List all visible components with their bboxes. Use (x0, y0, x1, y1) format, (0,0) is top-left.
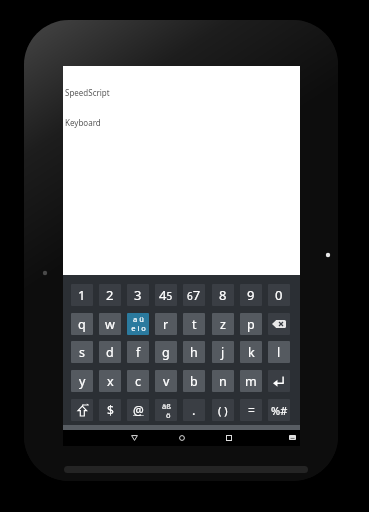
staticText: Keyboard (65, 117, 101, 128)
staticText: SpeedScript (65, 87, 110, 98)
button[interactable]: y (71, 370, 93, 392)
staticText: x (107, 373, 114, 390)
staticText: äß ö (162, 401, 171, 420)
button[interactable]: v (155, 370, 177, 392)
button[interactable] (71, 399, 93, 421)
button[interactable] (289, 435, 296, 440)
staticText: t (192, 316, 197, 333)
staticText: j (221, 344, 225, 361)
staticText: 8 (219, 286, 227, 304)
button[interactable]: 9 (240, 284, 262, 306)
staticText: a ü e i o (131, 314, 146, 334)
button[interactable]: 1 (71, 284, 93, 306)
button[interactable]: a ü e i o (127, 313, 149, 335)
button[interactable]: 0 (268, 284, 290, 306)
button[interactable]: %# (268, 399, 290, 421)
button[interactable]: äß ö (155, 399, 177, 421)
button[interactable]: t (183, 313, 205, 335)
staticText: n (219, 373, 227, 390)
staticText: = (248, 402, 255, 418)
button[interactable]: @ (127, 399, 149, 421)
button[interactable]: w (99, 313, 121, 335)
staticText: 67 (187, 286, 201, 304)
staticText: d (106, 344, 114, 361)
button[interactable]: s (71, 341, 93, 363)
button[interactable]: 3 (127, 284, 149, 306)
staticText: 3 (134, 286, 142, 304)
button[interactable]: ( ) (212, 399, 234, 421)
staticText: ( ) (218, 403, 228, 418)
staticText: f (136, 344, 141, 361)
staticText: b (190, 373, 198, 390)
button[interactable] (268, 370, 290, 392)
button[interactable]: n (212, 370, 234, 392)
button[interactable]: j (212, 341, 234, 363)
staticText: @ (133, 402, 144, 418)
button[interactable]: l (268, 341, 290, 363)
button[interactable]: Keyboard (63, 112, 300, 130)
staticText: %# (271, 403, 288, 418)
staticText: 2 (106, 286, 114, 304)
button[interactable]: r (155, 313, 177, 335)
staticText: g (162, 344, 170, 361)
staticText: 9 (247, 286, 255, 304)
staticText: h (190, 344, 198, 361)
button[interactable]: g (155, 341, 177, 363)
button[interactable]: = (240, 399, 262, 421)
staticText: $ (107, 402, 114, 418)
button[interactable]: f (127, 341, 149, 363)
button[interactable]: z (212, 313, 234, 335)
staticText: z (220, 316, 226, 333)
button[interactable] (226, 435, 232, 441)
staticText: v (163, 373, 170, 390)
button[interactable]: 2 (99, 284, 121, 306)
staticText: r (163, 316, 169, 333)
button[interactable]: q (71, 313, 93, 335)
staticText: s (79, 344, 85, 361)
button[interactable]: $ (99, 399, 121, 421)
button[interactable]: b (183, 370, 205, 392)
staticText: q (78, 316, 86, 333)
staticText: . (192, 401, 196, 419)
staticText: 45 (159, 286, 173, 304)
staticText: l (277, 344, 281, 361)
staticText: c (135, 373, 142, 390)
button[interactable]: m (240, 370, 262, 392)
button[interactable]: p (240, 313, 262, 335)
button[interactable]: d (99, 341, 121, 363)
button[interactable] (131, 435, 138, 441)
staticText: 0 (275, 286, 283, 304)
button[interactable]: h (183, 341, 205, 363)
staticText: y (79, 373, 86, 390)
button[interactable] (268, 313, 290, 335)
button[interactable]: 45 (155, 284, 177, 306)
button[interactable]: k (240, 341, 262, 363)
staticText: w (105, 316, 115, 333)
button[interactable] (179, 435, 185, 441)
button[interactable]: c (127, 370, 149, 392)
button[interactable]: 8 (212, 284, 234, 306)
staticText: m (245, 373, 257, 390)
button[interactable]: . (183, 399, 205, 421)
button[interactable]: 67 (183, 284, 205, 306)
button[interactable]: x (99, 370, 121, 392)
staticText: k (248, 344, 255, 361)
staticText: 1 (78, 286, 86, 304)
staticText: p (247, 316, 255, 333)
